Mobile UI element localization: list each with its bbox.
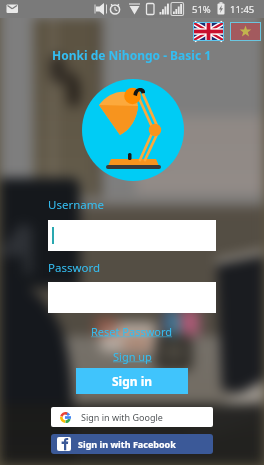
button[interactable]: Sign up (113, 349, 152, 364)
button[interactable]: Reset Password (91, 324, 173, 339)
staticText: 11:45 (230, 3, 255, 16)
button[interactable]: Sign in with Facebook (51, 434, 213, 454)
staticText: Sign in with Google (81, 411, 163, 423)
staticText: Sign in with Facebook (78, 438, 176, 450)
staticText: Honki de Nihongo - Basic 1 (52, 47, 212, 63)
button[interactable]: Sign in with Google (51, 407, 213, 427)
staticText: Username (48, 197, 104, 213)
button[interactable] (48, 220, 216, 251)
staticText: Password (48, 260, 101, 276)
staticText: 51% (192, 3, 211, 16)
staticText: Sign in (112, 373, 153, 389)
button[interactable]: Sign in (76, 368, 188, 394)
button[interactable]: English (193, 22, 224, 41)
button[interactable]: Vietnamese (230, 22, 261, 41)
